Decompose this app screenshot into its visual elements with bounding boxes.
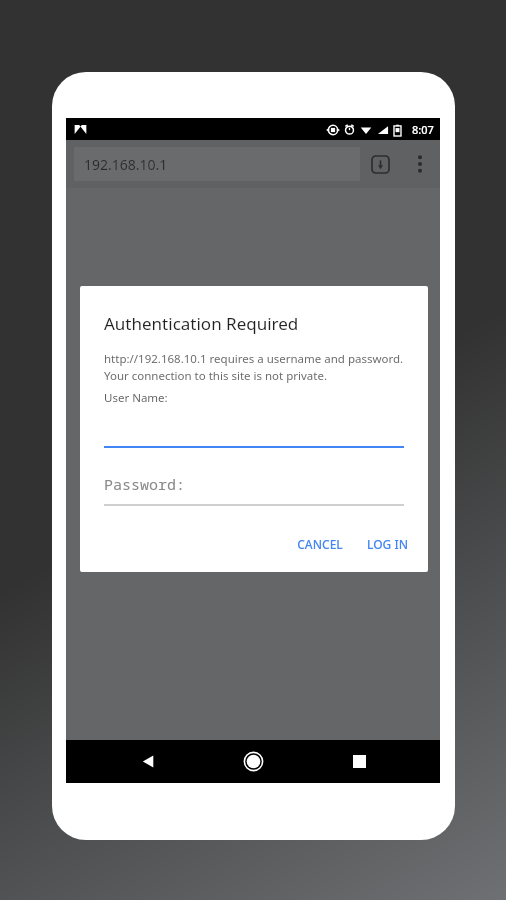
button[interactable]: LOG IN (359, 530, 416, 558)
button[interactable]: Back (124, 740, 172, 783)
staticText: CANCEL (297, 536, 343, 552)
button[interactable]: 192.168.10.1 (74, 147, 360, 181)
staticText: LOG IN (367, 536, 408, 552)
staticText: User Name: (104, 390, 168, 406)
staticText: Password: (104, 474, 186, 494)
button[interactable]: Home (229, 740, 277, 783)
staticText: http://192.168.10.1 requires a username … (104, 351, 408, 383)
staticText: 8:07 (412, 122, 434, 137)
staticText: Authentication Required (104, 312, 299, 335)
button[interactable]: More options (400, 144, 440, 184)
button[interactable]: User Name field (104, 406, 404, 448)
button[interactable]: CANCEL (289, 530, 351, 558)
button[interactable]: Downloads (360, 144, 400, 184)
button[interactable]: Recent apps (335, 740, 383, 783)
staticText: 192.168.10.1 (84, 155, 168, 174)
button[interactable]: Password field (104, 474, 404, 506)
